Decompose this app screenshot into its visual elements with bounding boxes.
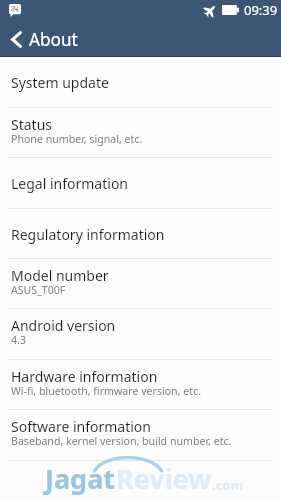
staticText: System update (11, 73, 109, 92)
staticText: Phone number, signal, etc. (11, 132, 143, 146)
staticText: Wi-fi, bluetooth, firmware version, etc. (11, 384, 201, 398)
staticText: About (29, 28, 78, 51)
staticText: Model number (11, 266, 109, 285)
staticText: 4.3 (11, 333, 26, 347)
button[interactable]: System update (0, 57, 281, 108)
staticText: Software information (11, 417, 151, 436)
staticText: Baseband, kernel version, build number, … (11, 434, 232, 448)
button[interactable]: Android version (0, 309, 281, 360)
button[interactable]: Regulatory information (0, 209, 281, 259)
staticText: Status (11, 115, 53, 134)
button[interactable]: Legal information (0, 158, 281, 209)
staticText: Android version (11, 316, 116, 335)
staticText: Hardware information (11, 367, 158, 386)
button[interactable]: Back (3, 22, 29, 56)
button[interactable]: Status (0, 108, 281, 158)
button[interactable]: Model number (0, 259, 281, 309)
staticText: ASUS_T00F (11, 283, 66, 297)
staticText: Jagat (45, 460, 116, 497)
staticText: Review (116, 460, 212, 497)
staticText: 09:39 (244, 1, 278, 19)
staticText: .com (212, 476, 244, 494)
staticText: Regulatory information (11, 225, 165, 244)
staticText: Legal information (11, 174, 129, 193)
button[interactable]: Hardware information (0, 360, 281, 410)
button[interactable]: Software information (0, 410, 281, 461)
